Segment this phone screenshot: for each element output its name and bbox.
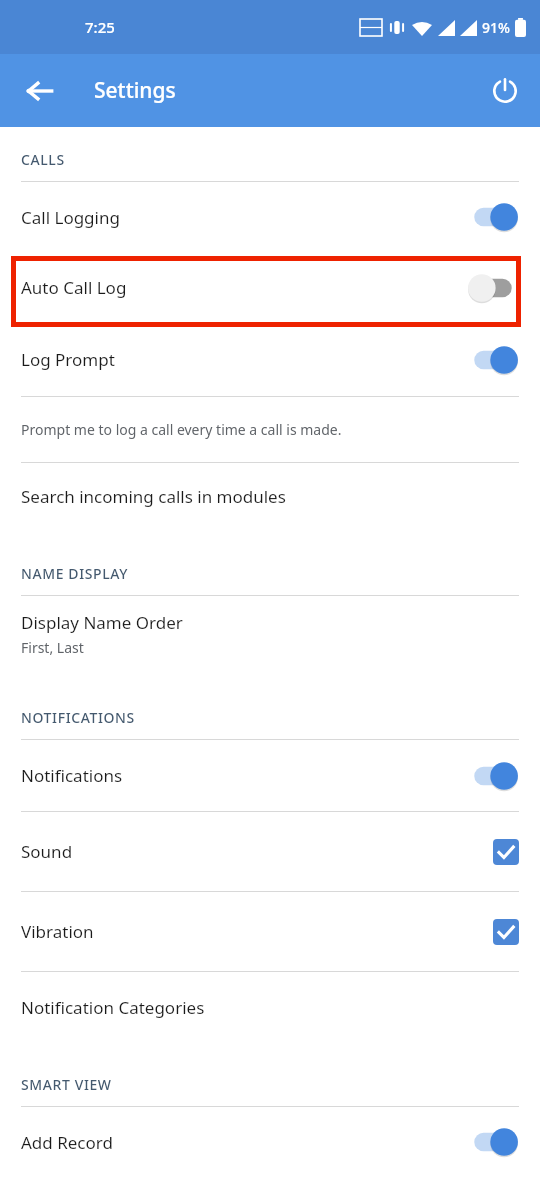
button[interactable]: Sound [0,812,540,891]
staticText: 7:25 [85,17,115,37]
staticText: Vibration [21,920,493,943]
staticText: Call Logging [21,206,467,229]
button[interactable]: Vibration [0,892,540,971]
button[interactable]: Back [18,69,62,113]
button[interactable]: Add Record [0,1107,540,1177]
button[interactable]: Power [482,68,528,114]
staticText: SMART VIEW [21,1075,112,1094]
staticText: Settings [94,76,176,105]
button[interactable]: Notification Categories [0,972,540,1042]
staticText: Sound [21,840,493,863]
staticText: Notifications [21,764,467,787]
button[interactable]: Call Logging [0,182,540,252]
staticText: CALLS [21,150,65,169]
staticText: Log Prompt [21,348,467,371]
staticText: Add Record [21,1131,467,1154]
staticText: Search incoming calls in modules [21,485,286,508]
staticText: NAME DISPLAY [21,564,128,583]
button[interactable]: Search incoming calls in modules [0,463,540,529]
button[interactable]: Notifications [0,740,540,811]
staticText: Prompt me to log a call every time a cal… [21,420,342,439]
staticText: First, Last [21,638,84,657]
staticText: 91% [482,18,510,37]
staticText: Display Name Order [21,611,183,634]
staticText: Notification Categories [21,996,205,1019]
button[interactable]: Display Name Order [0,596,540,672]
staticText: NOTIFICATIONS [21,708,135,727]
staticText: Auto Call Log [21,276,467,299]
button[interactable]: Auto Call Log [0,252,540,323]
button[interactable]: Prompt me to log a call every time a cal… [0,397,540,462]
button[interactable]: Log Prompt [0,323,540,396]
